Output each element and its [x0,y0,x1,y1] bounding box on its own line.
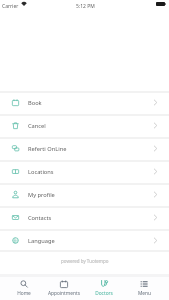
button[interactable]: Language [0,229,169,252]
staticText: My profile [28,191,55,199]
staticText: Appointments [48,290,80,297]
staticText: Book [28,99,42,107]
button[interactable]: Referti OnLine [0,137,169,160]
button[interactable]: Appointments [44,277,84,300]
staticText: Contacts [28,214,52,222]
button[interactable]: Cancel [0,114,169,137]
button[interactable]: Home [3,277,44,300]
button[interactable]: Contacts [0,206,169,229]
staticText: Carrier [2,3,19,10]
staticText: powered by Tuotempo [61,258,109,264]
staticText: Menu [138,290,151,297]
button[interactable]: Book [0,91,169,114]
button[interactable]: My profile [0,183,169,206]
staticText: Language [28,237,55,245]
button[interactable]: Locations [0,160,169,183]
staticText: Referti OnLine [28,145,67,153]
staticText: Locations [28,168,54,176]
button[interactable]: Doctors [84,277,124,300]
staticText: 5:12 PM [76,3,95,10]
staticText: Cancel [28,122,46,130]
button[interactable]: Menu [124,277,164,300]
staticText: Home [17,290,31,297]
staticText: Doctors [95,290,113,297]
